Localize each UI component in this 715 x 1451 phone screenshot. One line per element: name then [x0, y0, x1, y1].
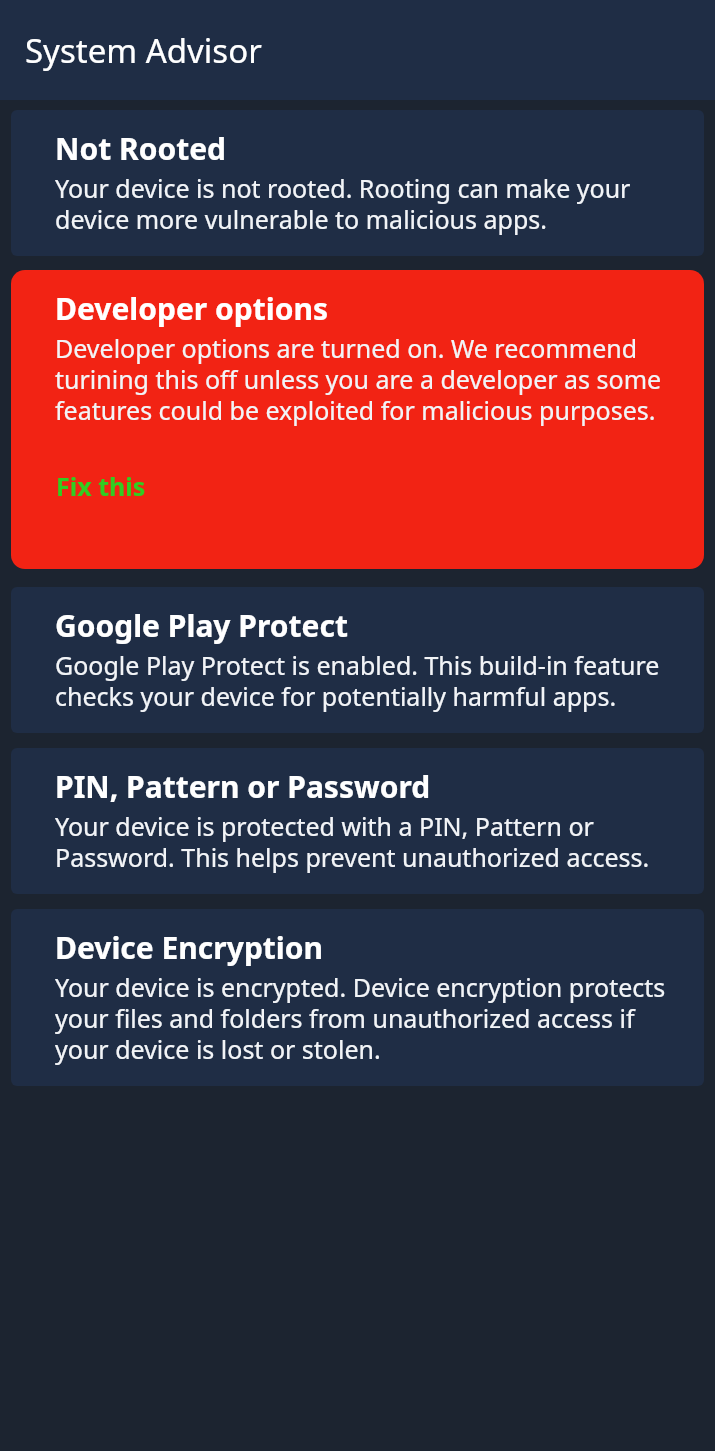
staticText: Developer options [55, 290, 329, 328]
staticText: Not Rooted [55, 130, 227, 168]
button[interactable]: Fix this [55, 467, 147, 505]
button[interactable]: PIN, Pattern or Password [11, 748, 704, 894]
staticText: System Advisor [25, 28, 262, 73]
staticText: Your device is not rooted. Rooting can m… [55, 174, 688, 236]
button[interactable]: Google Play Protect [11, 587, 704, 733]
staticText: Google Play Protect is enabled. This bui… [55, 651, 688, 713]
button[interactable]: Not Rooted [11, 110, 704, 256]
staticText: PIN, Pattern or Password [55, 768, 431, 806]
staticText: Google Play Protect [55, 607, 348, 645]
button[interactable]: Device Encryption [11, 909, 704, 1086]
staticText: Developer options are turned on. We reco… [55, 334, 688, 427]
staticText: Fix this [56, 469, 146, 503]
button[interactable]: Developer options [11, 270, 704, 569]
staticText: Your device is encrypted. Device encrypt… [55, 973, 688, 1066]
staticText: Device Encryption [55, 929, 324, 967]
staticText: Your device is protected with a PIN, Pat… [55, 812, 688, 874]
